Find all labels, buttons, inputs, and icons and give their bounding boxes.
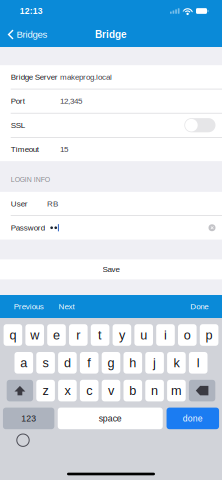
button[interactable]: x [58, 380, 77, 401]
staticText: x [64, 383, 70, 398]
button[interactable]: y [113, 324, 131, 346]
staticText: Port [11, 97, 25, 105]
staticText: i [164, 328, 167, 342]
staticText: RB [47, 199, 58, 208]
button[interactable]: o [178, 324, 197, 346]
staticText: LOGIN INFO [11, 176, 50, 183]
button[interactable]: Bridges [0, 22, 53, 46]
staticText: User [11, 199, 28, 208]
staticText: f [87, 356, 91, 370]
staticText: Bridge [95, 29, 127, 40]
button[interactable]: d [58, 352, 77, 374]
button[interactable]: User [0, 192, 222, 215]
staticText: SSL [11, 121, 25, 130]
button[interactable]: j [145, 352, 164, 374]
button[interactable]: Save [0, 259, 222, 279]
staticText: o [184, 328, 191, 342]
button[interactable]: u [134, 324, 153, 346]
staticText: Previous [14, 302, 44, 311]
staticText: z [43, 383, 49, 398]
staticText: b [129, 383, 136, 398]
staticText: r [76, 328, 80, 342]
button[interactable]: Done [187, 295, 211, 318]
button[interactable]: SSL [184, 118, 215, 132]
staticText: k [173, 356, 179, 370]
staticText: j [153, 356, 156, 370]
staticText: m [171, 383, 182, 398]
staticText: c [86, 383, 92, 398]
button[interactable]: Space [58, 408, 163, 429]
staticText: w [30, 328, 39, 342]
button[interactable]: Port [0, 89, 222, 113]
staticText: Password [11, 223, 45, 232]
button[interactable]: q [4, 324, 22, 346]
button[interactable]: n [145, 380, 164, 401]
button[interactable]: Next keyboard [16, 433, 30, 447]
button[interactable]: Next [55, 295, 78, 318]
button[interactable]: Bridge Server [0, 65, 222, 89]
staticText: p [206, 328, 213, 342]
button[interactable]: f [80, 352, 98, 374]
staticText: y [119, 328, 125, 342]
button[interactable]: Timeout [0, 137, 222, 161]
button[interactable]: p [200, 324, 218, 346]
staticText: makeprog.local [60, 72, 112, 81]
button[interactable]: c [80, 380, 98, 401]
button[interactable]: a [14, 352, 33, 374]
staticText: Done [190, 302, 208, 311]
staticText: 12:13 [20, 6, 43, 16]
button[interactable]: s [36, 352, 55, 374]
button[interactable]: b [123, 380, 142, 401]
staticText: Timeout [11, 145, 39, 154]
staticText: 12,345 [60, 97, 82, 105]
button[interactable]: Shift [7, 380, 33, 401]
button[interactable]: Previous [10, 295, 47, 318]
staticText: a [20, 356, 27, 370]
button[interactable]: Clear password [208, 224, 215, 231]
button[interactable]: v [102, 380, 120, 401]
button[interactable]: Delete [189, 380, 215, 401]
staticText: u [140, 328, 147, 342]
button[interactable]: Done [167, 408, 219, 429]
staticText: Save [102, 265, 119, 274]
staticText: d [64, 356, 71, 370]
staticText: h [129, 356, 136, 370]
staticText: done [183, 414, 203, 423]
button[interactable]: r [69, 324, 88, 346]
staticText: n [151, 383, 158, 398]
button[interactable]: h [123, 352, 142, 374]
button[interactable]: e [47, 324, 66, 346]
staticText: e [53, 328, 60, 342]
staticText: g [107, 356, 114, 370]
staticText: v [108, 383, 114, 398]
staticText: q [9, 328, 16, 342]
staticText: s [43, 356, 49, 370]
button[interactable]: k [167, 352, 186, 374]
button[interactable]: l [189, 352, 207, 374]
button[interactable]: g [102, 352, 120, 374]
button[interactable]: m [167, 380, 186, 401]
staticText: l [197, 356, 200, 370]
staticText: 123 [21, 414, 36, 423]
staticText: Bridges [16, 29, 47, 40]
staticText: Bridge Server [11, 72, 58, 81]
button[interactable]: i [156, 324, 175, 346]
button[interactable]: w [25, 324, 44, 346]
staticText: Next [59, 302, 75, 311]
staticText: space [99, 414, 122, 423]
button[interactable]: Numbers [3, 408, 54, 429]
staticText: t [98, 328, 102, 342]
button[interactable]: t [91, 324, 109, 346]
button[interactable]: z [36, 380, 55, 401]
staticText: 15 [60, 145, 68, 154]
